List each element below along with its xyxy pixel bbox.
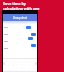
button[interactable] <box>31 33 36 36</box>
staticText: Group chat <box>13 16 27 20</box>
button[interactable] <box>31 44 36 47</box>
staticText: calculating with one <box>3 6 40 11</box>
button[interactable] <box>26 26 31 29</box>
staticText: Save time by <box>3 1 26 6</box>
button[interactable] <box>28 37 33 40</box>
